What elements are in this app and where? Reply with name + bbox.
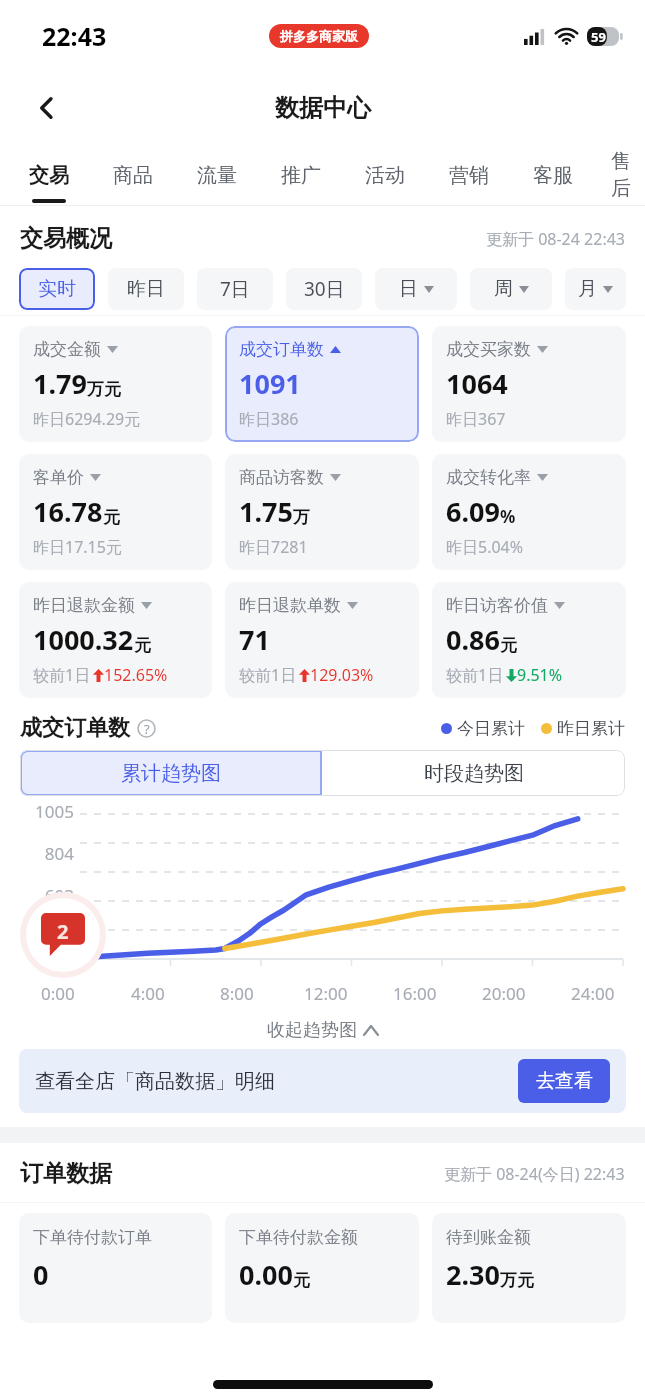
button[interactable]: 售后 <box>611 144 645 206</box>
button[interactable]: 成交转化率 <box>432 454 626 570</box>
staticText: 月 <box>578 277 597 301</box>
staticText: 4:00 <box>131 982 165 1005</box>
staticText: 售后 <box>611 149 645 201</box>
staticText: 成交买家数 <box>446 339 531 360</box>
staticText: 推广 <box>281 163 321 188</box>
button[interactable]: 成交订单数 <box>225 326 419 442</box>
staticText: 昨日退款金额 <box>33 595 135 616</box>
staticText: 成交转化率 <box>446 467 531 488</box>
button[interactable]: 成交买家数 <box>432 326 626 442</box>
staticText: 下单待付款订单 <box>33 1227 152 1248</box>
staticText: ? <box>144 720 150 738</box>
staticText: 拼多多商家版 <box>280 28 358 44</box>
button[interactable]: 下单待付款订单 <box>19 1213 212 1323</box>
staticText: 实时 <box>38 277 76 301</box>
staticText: 1000.32 <box>33 621 134 658</box>
button[interactable]: 昨日退款金额 <box>19 582 212 698</box>
staticText: 804 <box>44 842 74 865</box>
staticText: 0:00 <box>41 982 75 1005</box>
staticText: 客服 <box>533 163 573 188</box>
button[interactable]: 下单待付款金额 <box>225 1213 419 1323</box>
staticText: 交易 <box>29 163 69 188</box>
button[interactable]: 成交金额 <box>19 326 212 442</box>
staticText: 昨日累计 <box>557 718 625 739</box>
staticText: 71 <box>239 621 270 658</box>
staticText: 收起趋势图 <box>267 1019 357 1042</box>
staticText: 20:00 <box>482 982 526 1005</box>
button[interactable]: 累计趋势图 <box>20 750 322 796</box>
staticText: 129.03% <box>310 664 374 686</box>
staticText: 8:00 <box>220 982 254 1005</box>
staticText: 1005 <box>35 800 74 823</box>
staticText: 1.79 <box>33 365 87 402</box>
button[interactable]: 实时 <box>19 268 95 310</box>
button[interactable]: 交易 <box>23 144 75 206</box>
staticText: 1.75 <box>239 493 293 530</box>
button[interactable]: Back <box>24 85 70 131</box>
staticText: 9.51% <box>517 664 563 686</box>
staticText: 昨日 <box>127 277 165 301</box>
button[interactable]: 昨日退款单数 <box>225 582 419 698</box>
staticText: 昨日退款单数 <box>239 595 341 616</box>
staticText: 59 <box>591 28 606 46</box>
staticText: 更新于 08-24 22:43 <box>486 228 625 250</box>
button[interactable]: 活动 <box>359 144 411 206</box>
staticText: 营销 <box>449 163 489 188</box>
button[interactable]: 去查看 <box>518 1059 610 1103</box>
button[interactable]: 客服 <box>527 144 579 206</box>
staticText: 待到账金额 <box>446 1227 531 1248</box>
button[interactable]: 时段趋势图 <box>322 750 625 796</box>
staticText: 较前1日 <box>33 664 91 686</box>
button[interactable]: 昨日访客价值 <box>432 582 626 698</box>
staticText: 0 <box>61 942 71 965</box>
button[interactable]: Messages, 2 unread <box>20 892 106 978</box>
button[interactable]: 流量 <box>191 144 243 206</box>
staticText: 更新于 08-24(今日) 22:43 <box>444 1163 625 1185</box>
button[interactable]: 商品访客数 <box>225 454 419 570</box>
staticText: 昨日6294.29元 <box>33 408 141 430</box>
button[interactable]: 7日 <box>197 268 273 310</box>
button[interactable]: 查看全店「商品数据」明细 <box>19 1049 626 1113</box>
button[interactable]: 30日 <box>286 268 362 310</box>
staticText: 万元 <box>87 379 121 400</box>
staticText: 1091 <box>239 365 301 402</box>
button[interactable]: 日 <box>375 268 457 310</box>
button[interactable]: 待到账金额 <box>432 1213 626 1323</box>
staticText: 数据中心 <box>275 93 371 123</box>
staticText: 元 <box>293 1270 310 1291</box>
staticText: 22:43 <box>42 19 107 53</box>
staticText: 日 <box>399 277 418 301</box>
button[interactable]: 月 <box>565 268 626 310</box>
button[interactable]: 推广 <box>275 144 327 206</box>
staticText: 元 <box>134 635 151 656</box>
button[interactable]: Help <box>137 719 156 738</box>
staticText: 152.65% <box>104 664 168 686</box>
staticText: 16.78 <box>33 493 103 530</box>
button[interactable]: 收起趋势图 <box>0 1011 645 1049</box>
button[interactable]: 昨日 <box>108 268 184 310</box>
button[interactable]: 商品 <box>107 144 159 206</box>
button[interactable]: 客单价 <box>19 454 212 570</box>
staticText: 查看全店「商品数据」明细 <box>35 1069 275 1094</box>
staticText: 客单价 <box>33 467 84 488</box>
staticText: 2.30 <box>446 1256 500 1293</box>
staticText: 活动 <box>365 163 405 188</box>
staticText: 成交金额 <box>33 339 101 360</box>
staticText: 昨日386 <box>239 408 299 430</box>
staticText: 12:00 <box>304 982 348 1005</box>
staticText: 24:00 <box>571 982 615 1005</box>
staticText: 万 <box>293 507 310 528</box>
staticText: 6.09 <box>446 493 500 530</box>
staticText: 交易概况 <box>20 224 112 253</box>
staticText: 昨日7281 <box>239 536 308 558</box>
staticText: 2 <box>57 918 69 945</box>
staticText: 昨日17.15元 <box>33 536 122 558</box>
staticText: 较前1日 <box>446 664 504 686</box>
button[interactable]: 营销 <box>443 144 495 206</box>
staticText: 时段趋势图 <box>424 761 524 786</box>
staticText: 30日 <box>304 276 345 302</box>
button[interactable]: 周 <box>470 268 552 310</box>
staticText: 昨日367 <box>446 408 506 430</box>
staticText: 订单数据 <box>20 1159 112 1188</box>
staticText: 昨日5.04% <box>446 536 524 558</box>
